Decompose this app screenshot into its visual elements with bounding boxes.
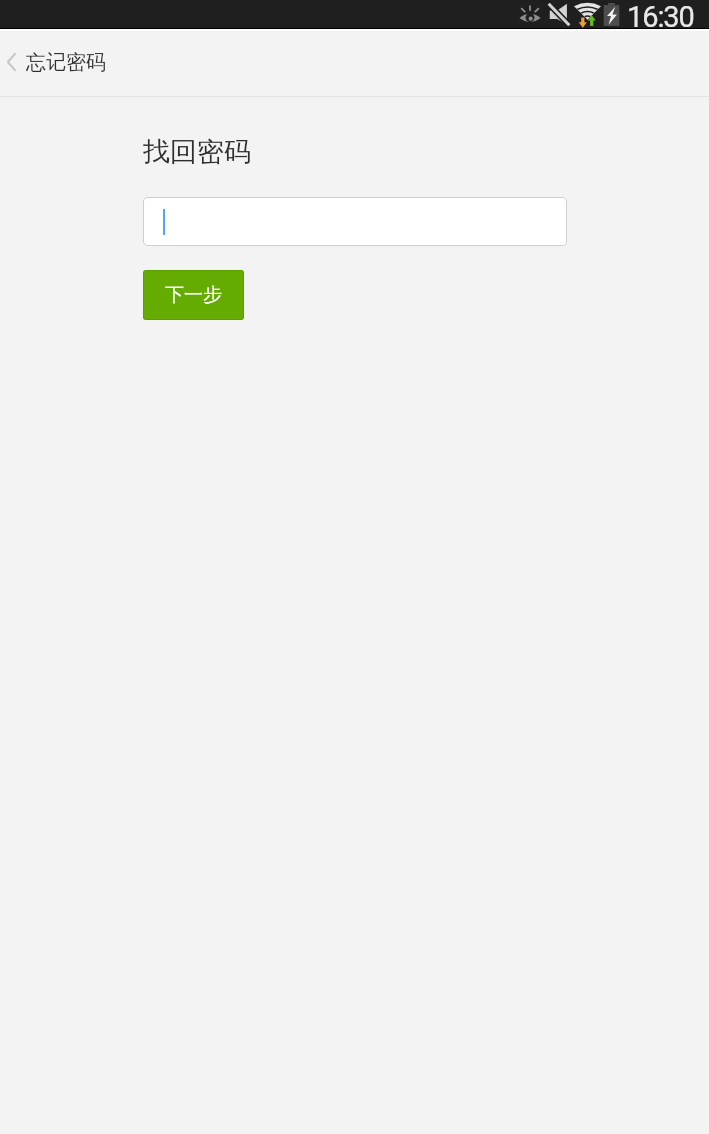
staticText: 忘记密码 (26, 50, 106, 75)
staticText: 找回密码 (143, 135, 251, 169)
staticText: 16:30 (627, 0, 694, 29)
button[interactable] (143, 197, 567, 246)
button[interactable]: 下一步 (143, 270, 244, 320)
staticText: 下一步 (165, 283, 222, 307)
button[interactable]: Back to previous screen (0, 29, 122, 97)
